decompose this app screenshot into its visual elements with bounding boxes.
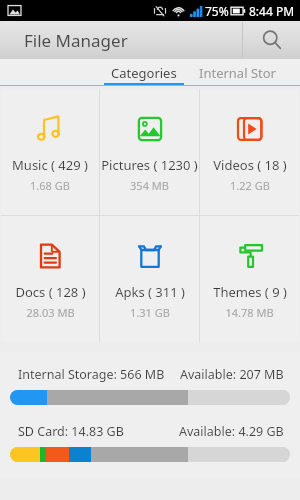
staticText: 1.22 GB [230, 178, 270, 193]
staticText: SD Card: 14.83 GB [18, 423, 124, 440]
staticText: 1.68 GB [30, 178, 70, 193]
staticText: Music ( 429 ) [12, 156, 88, 174]
staticText: 75% [205, 3, 229, 19]
staticText: Available: 4.29 GB [179, 423, 284, 440]
staticText: Available: 207 MB [180, 366, 284, 383]
staticText: Themes ( 9 ) [213, 283, 287, 301]
staticText: Docs ( 128 ) [15, 283, 86, 301]
button[interactable]: Internal Stor [192, 59, 300, 86]
button[interactable]: Categories [95, 59, 192, 86]
staticText: 14.78 MB [225, 305, 274, 320]
staticText: 1.31 GB [130, 305, 170, 320]
staticText: Pictures ( 1230 ) [101, 156, 198, 174]
staticText: Apks ( 311 ) [115, 283, 185, 301]
staticText: Videos ( 18 ) [213, 156, 287, 174]
staticText: Internal Stor [199, 64, 276, 82]
staticText: 8:44 PM [249, 3, 295, 19]
staticText: Categories [111, 64, 177, 82]
button[interactable]: Search [243, 21, 300, 59]
staticText: 354 MB [130, 178, 169, 193]
staticText: File Manager [24, 29, 128, 52]
button[interactable]: Apks ( 311 ) [100, 216, 199, 342]
button[interactable]: Pictures ( 1230 ) [100, 89, 199, 215]
button[interactable]: Docs ( 128 ) [1, 216, 99, 342]
button[interactable]: Music ( 429 ) [1, 89, 99, 215]
button[interactable]: Videos ( 18 ) [200, 89, 299, 215]
staticText: Internal Storage: 566 MB [18, 366, 165, 383]
staticText: 28.03 MB [26, 305, 75, 320]
button[interactable]: Themes ( 9 ) [200, 216, 299, 342]
